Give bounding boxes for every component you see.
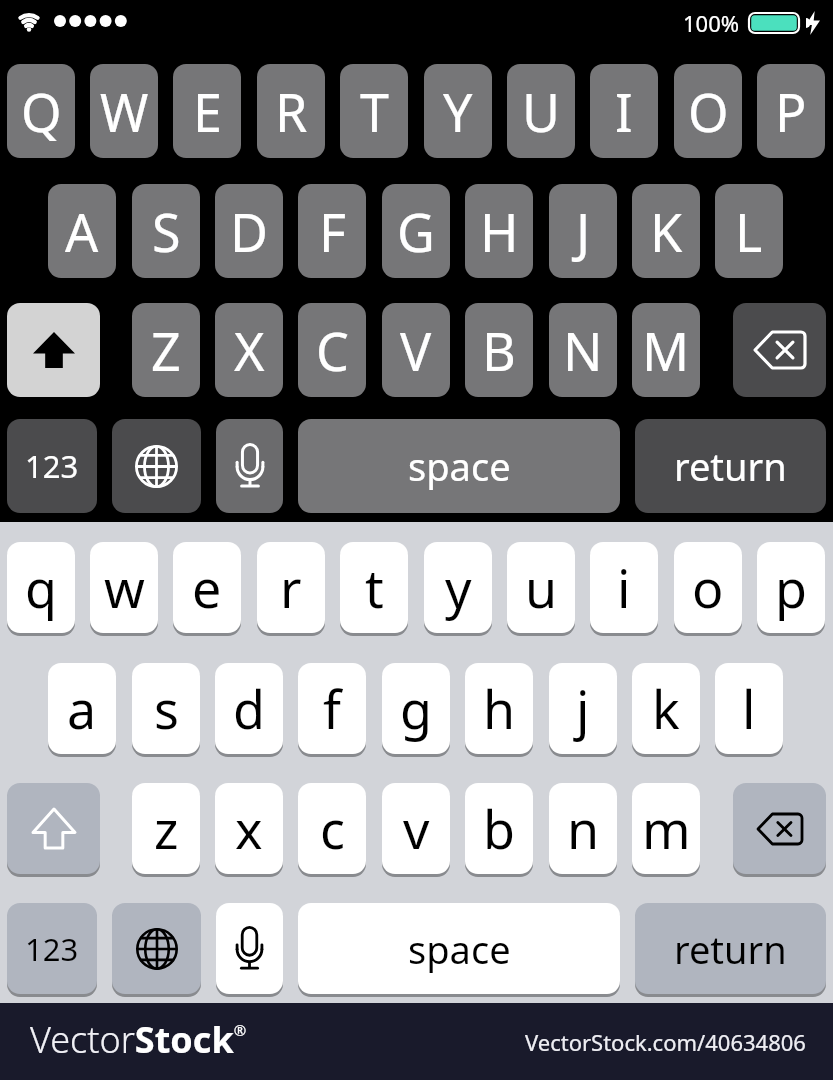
staticText: p xyxy=(775,552,807,623)
button[interactable]: return xyxy=(635,419,826,513)
staticText: R xyxy=(275,76,308,147)
button[interactable]: j xyxy=(549,663,617,754)
button[interactable]: M xyxy=(632,303,700,397)
button[interactable]: E xyxy=(173,64,241,158)
staticText: 123 xyxy=(25,445,79,487)
button[interactable]: h xyxy=(465,663,533,754)
button[interactable]: i xyxy=(590,542,658,633)
button[interactable]: k xyxy=(632,663,700,754)
button[interactable]: W xyxy=(90,64,158,158)
staticText: d xyxy=(233,673,265,744)
staticText: f xyxy=(323,673,341,744)
staticText: P xyxy=(775,76,807,147)
button[interactable]: H xyxy=(465,184,533,278)
button[interactable]: K xyxy=(632,184,700,278)
button[interactable] xyxy=(733,783,826,874)
staticText: E xyxy=(193,76,222,147)
button[interactable]: e xyxy=(173,542,241,633)
button[interactable]: 123 xyxy=(7,903,97,994)
staticText: w xyxy=(104,552,145,623)
button[interactable]: r xyxy=(257,542,325,633)
button[interactable]: J xyxy=(549,184,617,278)
staticText: b xyxy=(483,793,515,864)
button[interactable]: t xyxy=(340,542,408,633)
staticText: space xyxy=(408,440,511,492)
staticText: e xyxy=(192,552,222,623)
button[interactable]: F xyxy=(298,184,366,278)
button[interactable]: u xyxy=(507,542,575,633)
staticText: I xyxy=(615,76,633,147)
staticText: V xyxy=(400,315,432,386)
button[interactable]: y xyxy=(424,542,492,633)
button[interactable] xyxy=(112,903,201,994)
staticText: S xyxy=(152,196,181,267)
button[interactable] xyxy=(112,419,201,513)
button[interactable]: N xyxy=(549,303,617,397)
staticText: h xyxy=(483,673,516,744)
button[interactable]: O xyxy=(674,64,742,158)
button[interactable]: C xyxy=(298,303,366,397)
staticText: y xyxy=(445,552,472,623)
button[interactable]: U xyxy=(507,64,575,158)
button[interactable]: 123 xyxy=(7,419,97,513)
button[interactable]: a xyxy=(48,663,116,754)
button[interactable]: VectorStock® xyxy=(0,1003,833,1080)
button[interactable]: X xyxy=(215,303,283,397)
staticText: 123 xyxy=(25,928,79,970)
staticText: X xyxy=(234,315,265,386)
button[interactable]: c xyxy=(298,783,366,874)
button[interactable] xyxy=(7,783,100,874)
button[interactable]: L xyxy=(715,184,783,278)
button[interactable]: S xyxy=(132,184,200,278)
button[interactable]: R xyxy=(257,64,325,158)
staticText: m xyxy=(642,793,691,864)
button[interactable]: g xyxy=(382,663,450,754)
staticText: a xyxy=(67,673,97,744)
button[interactable]: s xyxy=(132,663,200,754)
button[interactable]: Z xyxy=(132,303,200,397)
staticText: F xyxy=(319,196,346,267)
button[interactable]: space xyxy=(298,419,620,513)
button[interactable]: w xyxy=(90,542,158,633)
staticText: o xyxy=(692,552,724,623)
button[interactable] xyxy=(216,419,283,513)
button[interactable] xyxy=(216,903,283,994)
button[interactable] xyxy=(7,303,100,397)
staticText: D xyxy=(230,196,268,267)
button[interactable]: v xyxy=(382,783,450,874)
button[interactable] xyxy=(733,303,826,397)
button[interactable]: f xyxy=(298,663,366,754)
staticText: s xyxy=(154,673,179,744)
staticText: H xyxy=(480,196,519,267)
button[interactable]: D xyxy=(215,184,283,278)
button[interactable]: G xyxy=(382,184,450,278)
button[interactable]: n xyxy=(549,783,617,874)
button[interactable]: T xyxy=(340,64,408,158)
button[interactable]: z xyxy=(132,783,200,874)
staticText: 100% xyxy=(683,8,740,38)
button[interactable]: b xyxy=(465,783,533,874)
button[interactable]: space xyxy=(298,903,620,994)
staticText: O xyxy=(688,76,729,147)
staticText: T xyxy=(360,76,389,147)
button[interactable]: A xyxy=(48,184,116,278)
button[interactable]: P xyxy=(757,64,825,158)
button[interactable]: I xyxy=(590,64,658,158)
button[interactable]: o xyxy=(674,542,742,633)
button[interactable]: p xyxy=(757,542,825,633)
button[interactable]: return xyxy=(635,903,826,994)
button[interactable]: m xyxy=(632,783,700,874)
button[interactable]: l xyxy=(715,663,783,754)
button[interactable]: V xyxy=(382,303,450,397)
button[interactable]: B xyxy=(465,303,533,397)
button[interactable]: d xyxy=(215,663,283,754)
staticText: z xyxy=(154,793,179,864)
staticText: J xyxy=(576,196,591,267)
button[interactable]: Y xyxy=(424,64,492,158)
staticText: u xyxy=(525,552,558,623)
button[interactable]: q xyxy=(7,542,75,633)
staticText: Q xyxy=(21,76,62,147)
button[interactable]: x xyxy=(215,783,283,874)
button[interactable]: Q xyxy=(7,64,75,158)
staticText: t xyxy=(365,552,384,623)
